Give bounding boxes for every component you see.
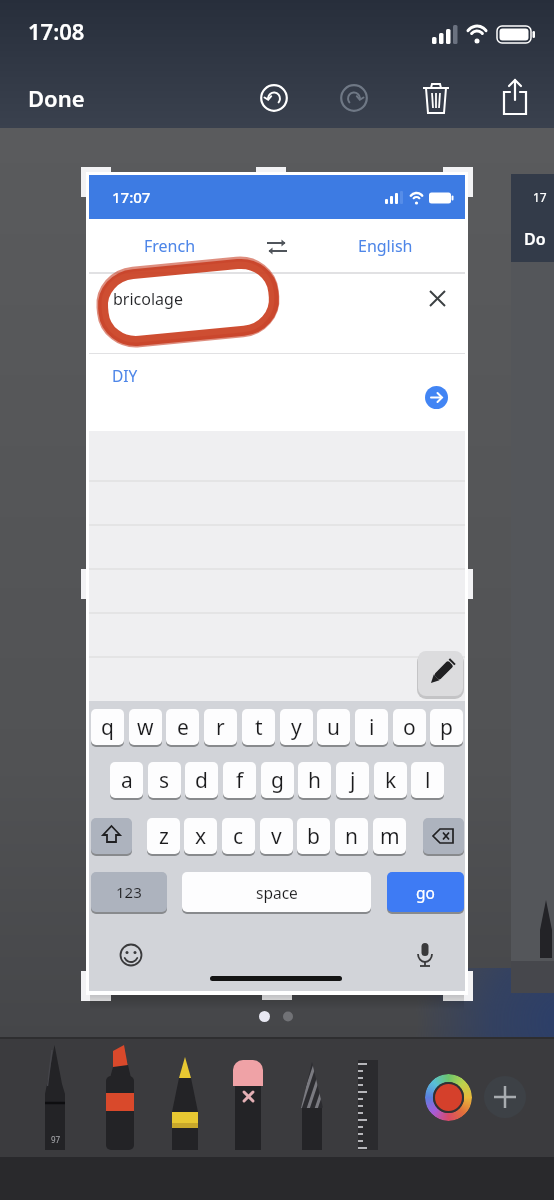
staticText: x xyxy=(195,822,207,851)
button[interactable]: v xyxy=(260,818,293,854)
staticText: Don xyxy=(524,228,554,250)
staticText: h xyxy=(308,766,321,795)
button[interactable]: e xyxy=(166,709,199,745)
button[interactable]: space xyxy=(182,872,371,912)
staticText: n xyxy=(345,822,358,851)
staticText: y xyxy=(291,713,302,742)
staticText: 17 xyxy=(533,189,547,205)
button[interactable] xyxy=(263,236,291,258)
button[interactable]: go xyxy=(387,872,464,912)
button[interactable]: u xyxy=(317,709,350,745)
button[interactable]: i xyxy=(355,709,388,745)
button[interactable] xyxy=(258,82,290,114)
button[interactable]: x xyxy=(184,818,217,854)
staticText: 123 xyxy=(116,882,142,902)
button[interactable] xyxy=(168,1052,202,1157)
staticText: 17:07 xyxy=(112,187,151,207)
staticText: 17:08 xyxy=(28,16,85,46)
staticText: m xyxy=(380,822,400,851)
button[interactable]: w xyxy=(129,709,162,745)
staticText: e xyxy=(177,713,189,742)
staticText: l xyxy=(425,766,431,795)
button[interactable] xyxy=(103,1042,137,1157)
button[interactable] xyxy=(231,1055,265,1150)
button[interactable]: k xyxy=(374,762,407,798)
staticText: s xyxy=(159,766,170,795)
staticText: k xyxy=(385,766,397,795)
button[interactable]: b xyxy=(297,818,330,854)
button[interactable]: a xyxy=(110,762,143,798)
button[interactable]: 97 xyxy=(38,1040,72,1157)
button[interactable]: d xyxy=(185,762,218,798)
staticText: f xyxy=(236,766,244,795)
button[interactable]: Done xyxy=(28,80,108,116)
button[interactable]: z xyxy=(147,818,180,854)
staticText: space xyxy=(256,882,298,903)
button[interactable]: f xyxy=(223,762,256,798)
button[interactable]: l xyxy=(411,762,444,798)
button[interactable] xyxy=(484,1076,526,1118)
staticText: i xyxy=(369,713,375,742)
button[interactable] xyxy=(355,1058,381,1153)
button[interactable] xyxy=(295,1058,329,1157)
staticText: a xyxy=(121,766,133,795)
button[interactable] xyxy=(423,818,464,854)
staticText: q xyxy=(101,713,114,742)
staticText: j xyxy=(350,766,356,795)
button[interactable] xyxy=(420,80,452,116)
button[interactable] xyxy=(499,78,533,118)
button[interactable]: q xyxy=(91,709,124,745)
staticText: t xyxy=(255,713,263,742)
button[interactable]: r xyxy=(204,709,237,745)
button[interactable]: French xyxy=(120,233,220,259)
staticText: go xyxy=(416,882,435,903)
button[interactable]: p xyxy=(430,709,463,745)
staticText: French xyxy=(144,235,196,257)
button[interactable]: o xyxy=(393,709,426,745)
button[interactable] xyxy=(418,651,463,696)
button[interactable] xyxy=(425,386,448,409)
button[interactable]: English xyxy=(330,233,440,259)
button[interactable]: n xyxy=(335,818,368,854)
button[interactable]: 123 xyxy=(91,872,167,912)
button[interactable] xyxy=(424,285,451,312)
staticText: Done xyxy=(28,83,85,113)
staticText: r xyxy=(216,713,225,742)
button[interactable]: c xyxy=(222,818,255,854)
staticText: c xyxy=(233,822,244,851)
button[interactable]: y xyxy=(280,709,313,745)
staticText: w xyxy=(137,713,154,742)
button[interactable] xyxy=(425,1074,472,1121)
button[interactable]: h xyxy=(298,762,331,798)
staticText: d xyxy=(195,766,208,795)
button[interactable]: g xyxy=(261,762,294,798)
staticText: z xyxy=(159,822,169,851)
staticText: DIY xyxy=(112,365,138,386)
button[interactable]: s xyxy=(148,762,181,798)
staticText: 97 xyxy=(51,1134,61,1145)
staticText: o xyxy=(403,713,416,742)
button[interactable] xyxy=(338,82,370,114)
staticText: p xyxy=(440,713,453,742)
staticText: b xyxy=(307,822,320,851)
button[interactable]: j xyxy=(336,762,369,798)
staticText: v xyxy=(271,822,282,851)
button[interactable]: t xyxy=(242,709,275,745)
staticText: bricolage xyxy=(113,288,183,310)
staticText: u xyxy=(327,713,340,742)
staticText: English xyxy=(358,235,413,257)
staticText: g xyxy=(271,766,284,795)
button[interactable] xyxy=(91,818,132,854)
button[interactable]: m xyxy=(373,818,406,854)
